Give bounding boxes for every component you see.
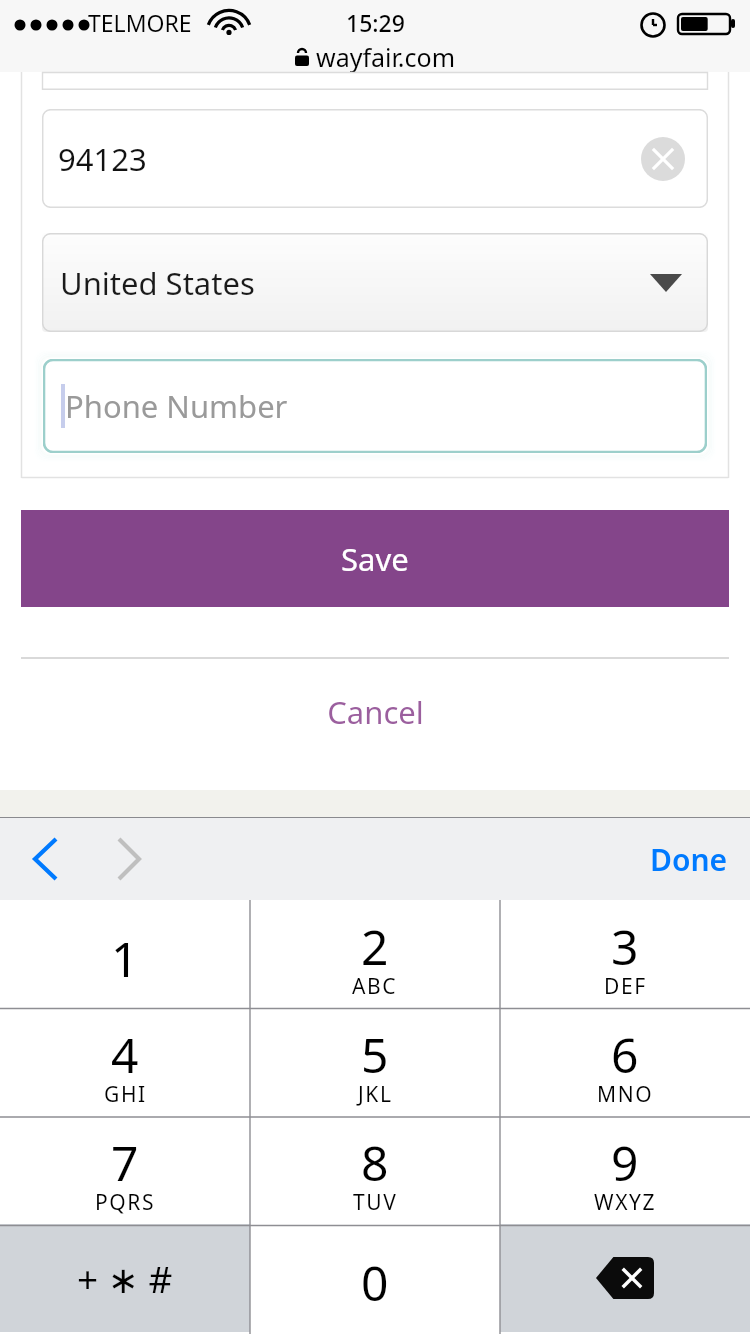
staticText: WXYZ	[594, 1188, 657, 1217]
staticText: 6	[611, 1022, 639, 1087]
staticText: Phone Number	[65, 385, 288, 427]
staticText: Save	[341, 538, 409, 580]
button[interactable]: Backspace	[500, 1224, 750, 1332]
staticText: MNO	[597, 1080, 654, 1109]
button[interactable]: Cancel	[0, 678, 750, 746]
staticText: 1	[111, 926, 139, 991]
staticText: Cancel	[327, 691, 424, 733]
staticText: 4	[111, 1022, 139, 1087]
staticText: wayfair.com	[316, 40, 456, 74]
staticText: 94123	[58, 138, 147, 180]
staticText: ABC	[352, 972, 398, 1001]
button[interactable]: + ∗ #	[0, 1224, 250, 1332]
button[interactable]: 0	[250, 1224, 500, 1332]
button[interactable]: 1	[0, 900, 250, 1008]
button[interactable]: 7	[0, 1116, 250, 1224]
button[interactable]: Done	[650, 818, 728, 900]
staticText: TELMORE	[88, 7, 192, 38]
staticText: PQRS	[95, 1188, 156, 1217]
staticText: TUV	[353, 1188, 398, 1217]
staticText: Done	[650, 839, 728, 880]
button[interactable]: 8	[250, 1116, 500, 1224]
staticText: 9	[611, 1130, 639, 1195]
button[interactable]: 5	[250, 1008, 500, 1116]
button[interactable]: 4	[0, 1008, 250, 1116]
staticText: United States	[60, 262, 255, 304]
button[interactable]: Next field	[98, 818, 160, 900]
staticText: 7	[111, 1130, 139, 1195]
button[interactable]: 94123	[42, 109, 708, 208]
staticText: JKL	[358, 1080, 393, 1109]
staticText: 3	[611, 914, 639, 979]
staticText: GHI	[104, 1080, 147, 1109]
button[interactable]: 2	[250, 900, 500, 1008]
staticText: 0	[361, 1250, 389, 1315]
staticText: 15:29	[346, 7, 405, 38]
button[interactable]: Phone Number	[43, 359, 707, 453]
staticText: 2	[361, 914, 389, 979]
staticText: 8	[361, 1130, 389, 1195]
button[interactable]: United States	[42, 233, 708, 332]
staticText: DEF	[604, 972, 647, 1001]
staticText: + ∗ #	[77, 1253, 173, 1303]
button[interactable]: 9	[500, 1116, 750, 1224]
button[interactable]: Save	[21, 510, 729, 607]
button[interactable]: Previous field	[14, 818, 76, 900]
button[interactable]: Clear zip code	[640, 136, 686, 182]
button[interactable]: 3	[500, 900, 750, 1008]
staticText: 5	[361, 1022, 389, 1087]
button[interactable]: 6	[500, 1008, 750, 1116]
